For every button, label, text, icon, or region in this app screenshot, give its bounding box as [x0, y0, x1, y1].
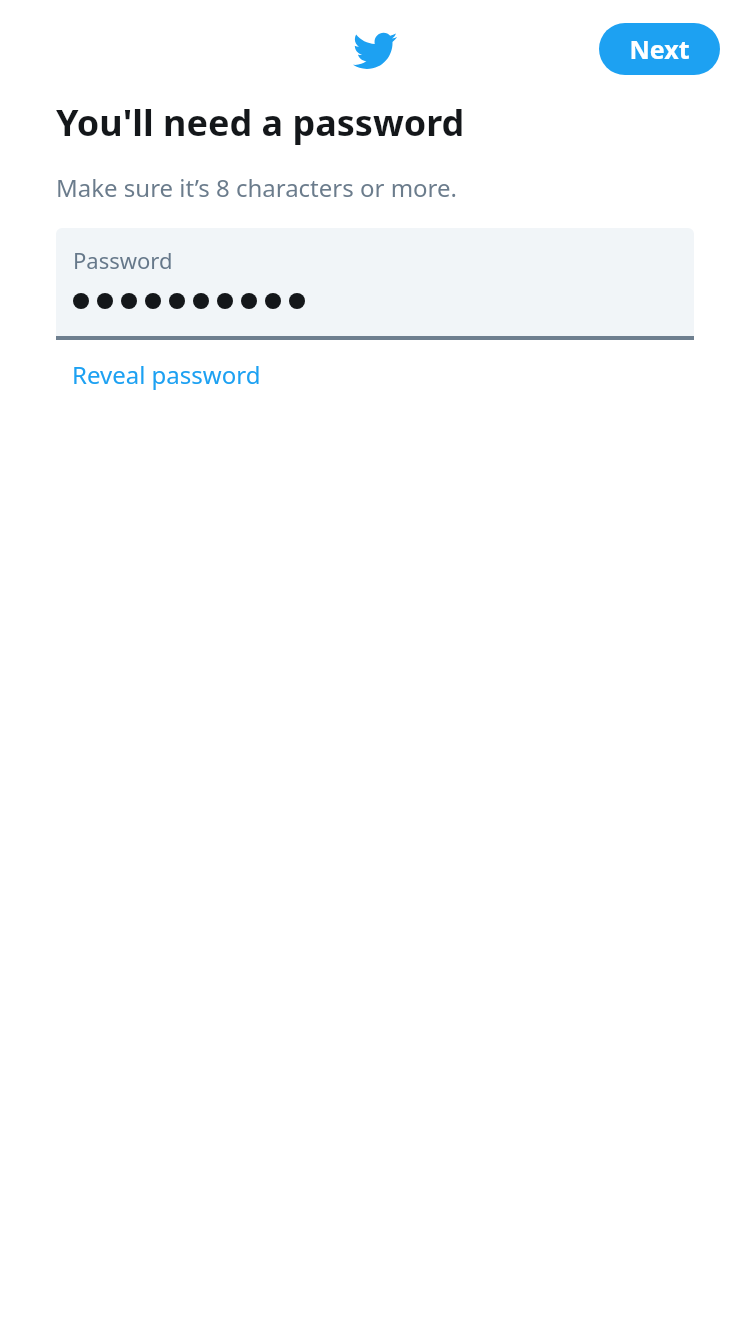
staticText: Password: [73, 245, 173, 275]
button[interactable]: Password: [56, 228, 694, 340]
other: Twitter: [349, 29, 401, 73]
staticText: You'll need a password: [56, 98, 465, 147]
button[interactable]: Next: [599, 23, 720, 75]
staticText: Make sure it’s 8 characters or more.: [56, 171, 457, 204]
staticText: Next: [629, 32, 690, 66]
staticText: Reveal password: [72, 358, 261, 391]
button[interactable]: Reveal password: [56, 354, 269, 395]
